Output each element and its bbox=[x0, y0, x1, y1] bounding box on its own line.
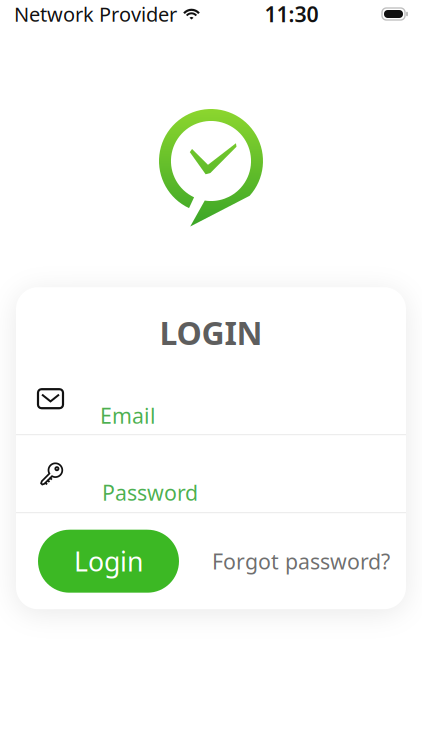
button[interactable]: Login bbox=[38, 530, 179, 593]
staticText: Forgot password? bbox=[212, 547, 390, 575]
staticText: Login bbox=[74, 543, 143, 579]
staticText: Password bbox=[102, 478, 198, 506]
staticText: Email bbox=[100, 401, 156, 429]
staticText: Network Provider bbox=[14, 1, 177, 27]
button[interactable]: Email bbox=[16, 364, 406, 434]
button[interactable]: Forgot password? bbox=[212, 539, 390, 583]
staticText: LOGIN bbox=[159, 311, 262, 354]
button[interactable]: Password bbox=[16, 435, 406, 512]
staticText: 11:30 bbox=[264, 0, 318, 28]
